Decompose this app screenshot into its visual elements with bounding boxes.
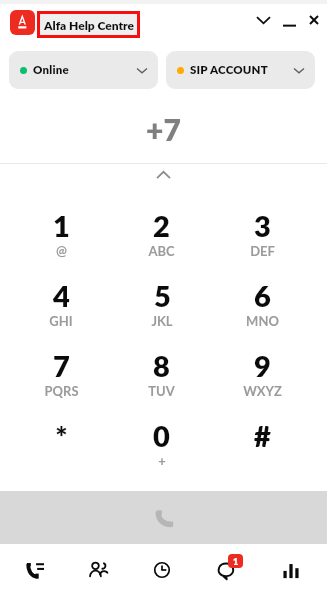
staticText: 3 xyxy=(254,208,271,243)
staticText: + xyxy=(158,453,166,469)
button[interactable]: 2 xyxy=(111,190,212,260)
staticText: +7 xyxy=(146,111,181,147)
button[interactable]: Collapse window xyxy=(252,8,275,31)
staticText: 4 xyxy=(53,278,70,313)
staticText: @ xyxy=(56,243,67,259)
button[interactable]: Alfa Help Centre xyxy=(40,14,137,35)
staticText: Alfa Help Centre xyxy=(44,18,134,32)
staticText: Online xyxy=(33,63,69,77)
button[interactable]: 8 xyxy=(111,330,212,400)
button[interactable]: # xyxy=(212,400,313,470)
staticText: DEF xyxy=(250,243,275,259)
button[interactable]: 5 xyxy=(111,260,212,330)
button[interactable]: Statistics xyxy=(278,557,304,583)
button[interactable]: Messages xyxy=(213,557,239,583)
staticText: PQRS xyxy=(44,383,79,399)
staticText: 6 xyxy=(254,278,271,313)
staticText: 0 xyxy=(153,418,170,453)
button[interactable]: Expand keypad xyxy=(0,164,327,186)
staticText: ABC xyxy=(148,243,175,259)
button[interactable]: 3 xyxy=(212,190,313,260)
button[interactable]: Alfa app xyxy=(10,10,35,35)
button[interactable]: Close window xyxy=(302,8,325,31)
staticText: 8 xyxy=(153,348,170,383)
staticText: 1 xyxy=(233,556,239,567)
button[interactable]: 1 xyxy=(11,190,111,260)
button[interactable]: 9 xyxy=(212,330,313,400)
button[interactable]: * xyxy=(11,400,111,470)
button[interactable]: History xyxy=(149,557,175,583)
staticText: # xyxy=(254,418,271,453)
staticText: GHI xyxy=(49,313,73,329)
button[interactable]: SIP ACCOUNT xyxy=(166,51,315,89)
staticText: MNO xyxy=(246,313,279,329)
staticText: 5 xyxy=(154,278,171,313)
staticText: JKL xyxy=(151,313,173,329)
staticText: 1 xyxy=(53,208,70,243)
staticText: WXYZ xyxy=(243,383,282,399)
staticText: SIP ACCOUNT xyxy=(190,63,268,77)
staticText: TUV xyxy=(148,383,175,399)
button[interactable]: Contacts xyxy=(85,557,111,583)
button[interactable]: Recents xyxy=(22,557,48,583)
button[interactable]: 7 xyxy=(11,330,111,400)
button[interactable]: Minimize window xyxy=(278,9,301,32)
button[interactable]: 6 xyxy=(212,260,313,330)
button[interactable]: Online xyxy=(9,51,158,89)
staticText: 9 xyxy=(254,348,271,383)
button[interactable]: 0 xyxy=(111,400,212,470)
staticText: 7 xyxy=(53,348,70,383)
staticText: * xyxy=(55,418,68,453)
button[interactable]: 4 xyxy=(11,260,111,330)
staticText: 2 xyxy=(153,208,170,243)
